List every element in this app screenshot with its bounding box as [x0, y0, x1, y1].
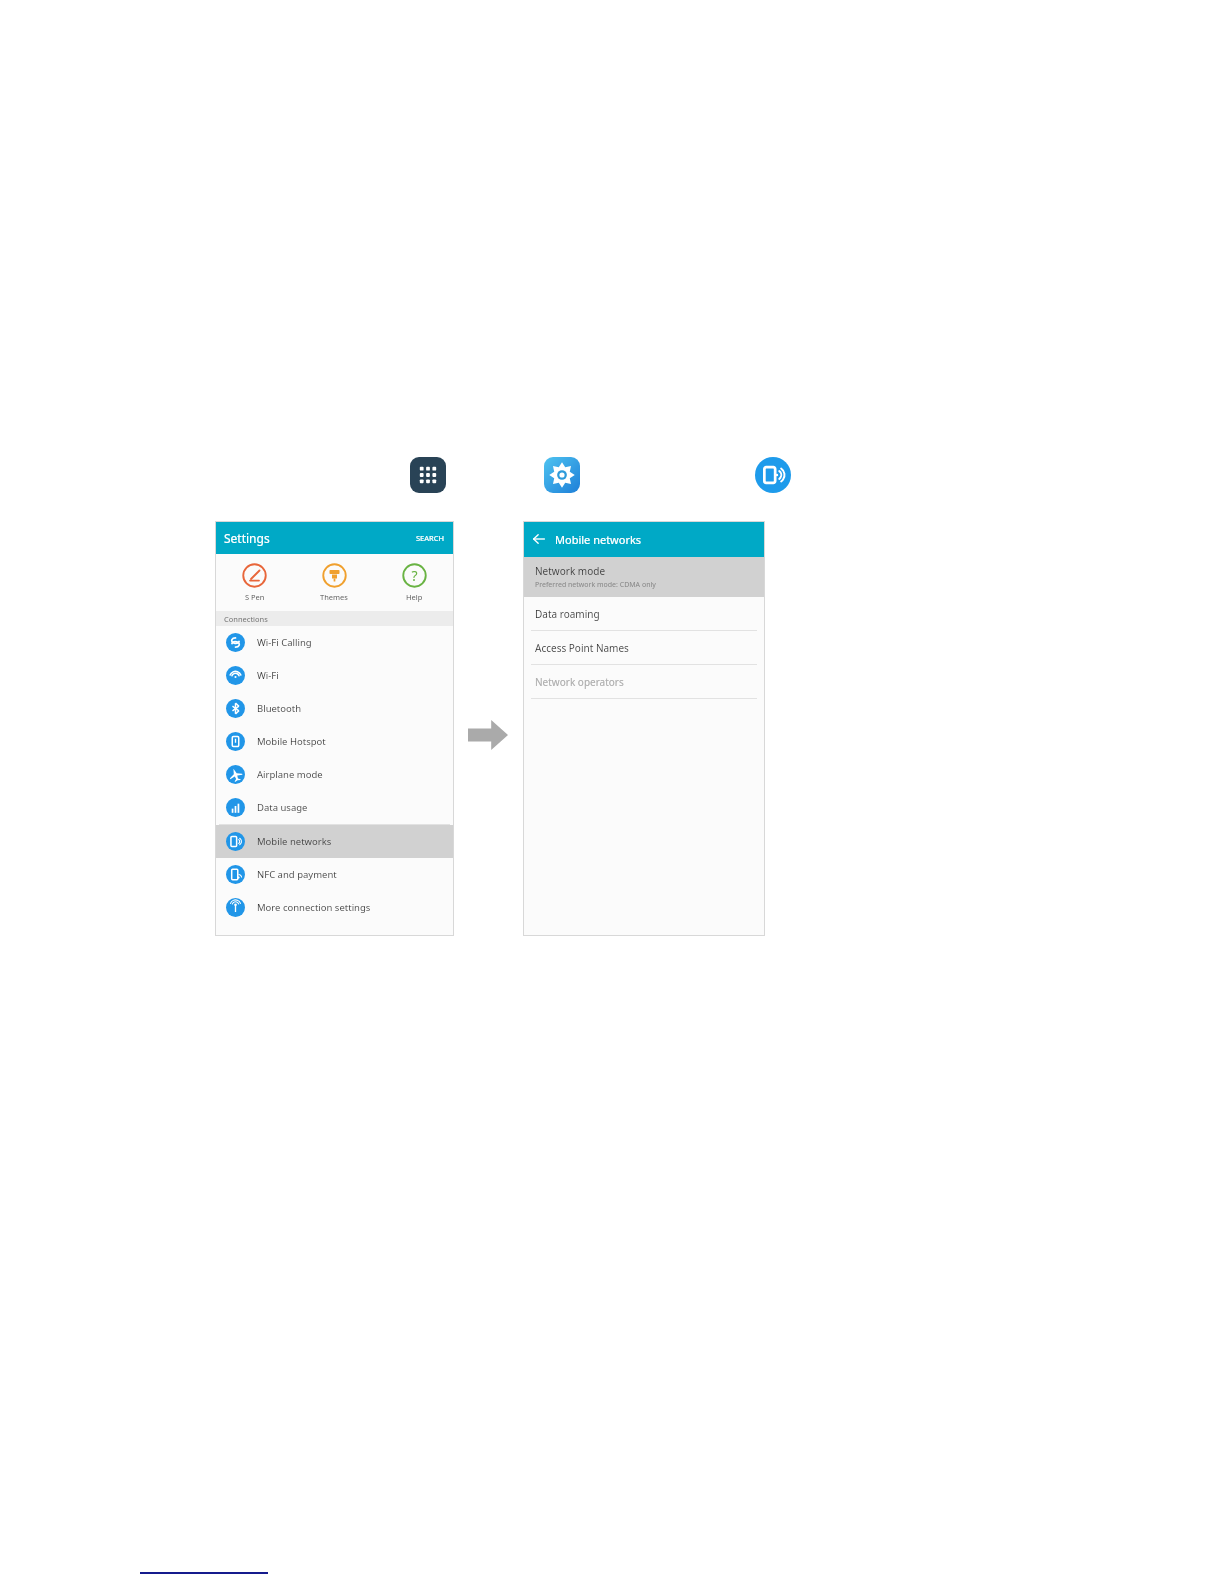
- button[interactable]: Apps: [410, 457, 446, 493]
- staticText: Preferred network mode: CDMA only: [535, 580, 656, 590]
- button[interactable]: Wi-Fi Calling: [215, 626, 454, 659]
- staticText: Mobile networks: [257, 835, 332, 848]
- button[interactable]: Mobile networks: [215, 825, 454, 858]
- button[interactable]: Data roaming: [523, 597, 765, 630]
- button[interactable]: Wi-Fi: [215, 659, 454, 692]
- button[interactable]: NFC and payment: [215, 858, 454, 891]
- staticText: Access Point Names: [535, 641, 629, 655]
- staticText: Bluetooth: [257, 702, 302, 715]
- button[interactable]: Access Point Names: [523, 631, 765, 664]
- staticText: More connection settings: [257, 901, 371, 914]
- staticText: Mobile networks: [555, 532, 642, 547]
- staticText: Airplane mode: [257, 768, 323, 781]
- button[interactable]: Bluetooth: [215, 692, 454, 725]
- button[interactable]: S Pen: [215, 554, 294, 611]
- staticText: Themes: [320, 592, 348, 602]
- button[interactable]: More connection settings: [215, 891, 454, 924]
- staticText: Help: [406, 592, 423, 602]
- staticText: SEARCH: [416, 533, 445, 543]
- staticText: Network operators: [535, 675, 624, 689]
- staticText: Wi-Fi: [257, 669, 279, 682]
- button[interactable]: Back: [532, 532, 546, 546]
- button[interactable]: Settings: [544, 457, 580, 493]
- button[interactable]: Network mode: [523, 557, 765, 597]
- staticText: Data roaming: [535, 607, 600, 621]
- button[interactable]: Data usage: [215, 791, 454, 824]
- staticText: ?: [411, 566, 418, 585]
- staticText: Connections: [224, 614, 268, 624]
- staticText: Mobile Hotspot: [257, 735, 326, 748]
- button[interactable]: Airplane mode: [215, 758, 454, 791]
- staticText: Wi-Fi Calling: [257, 636, 312, 649]
- staticText: Data usage: [257, 801, 308, 814]
- staticText: S Pen: [245, 592, 265, 602]
- button[interactable]: Mobile networks: [755, 457, 791, 493]
- button[interactable]: Network operators: [523, 665, 765, 698]
- staticText: NFC and payment: [257, 868, 337, 881]
- button[interactable]: ?: [374, 554, 454, 611]
- button[interactable]: Themes: [294, 554, 374, 611]
- staticText: Network mode: [535, 564, 606, 578]
- button[interactable]: Mobile Hotspot: [215, 725, 454, 758]
- staticText: Settings: [224, 530, 270, 546]
- button[interactable]: SEARCH: [416, 533, 445, 543]
